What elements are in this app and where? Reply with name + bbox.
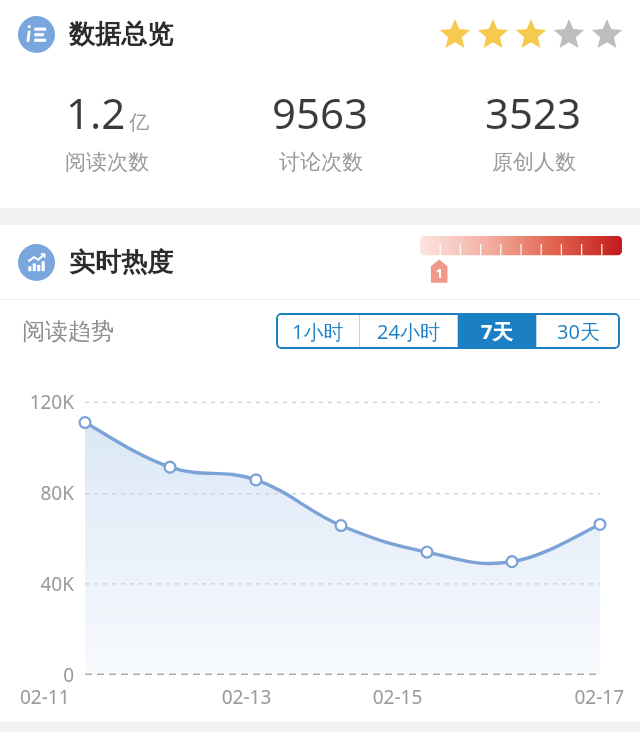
button[interactable]: Overview (0, 0, 640, 68)
staticText: 1小时 (292, 318, 344, 345)
staticText: 02-11 (20, 684, 171, 710)
staticText: 1 (436, 265, 443, 281)
staticText: 02-17 (473, 684, 624, 710)
button[interactable]: 7天 (458, 313, 536, 349)
staticText: 实时热度 (69, 246, 173, 279)
staticText: 30天 (557, 318, 600, 345)
other: Overview (18, 16, 55, 53)
button[interactable]: 3523 (427, 68, 640, 190)
button[interactable]: Rate 4 stars (550, 15, 588, 53)
staticText: 24小时 (377, 318, 440, 345)
staticText: 讨论次数 (279, 149, 363, 175)
staticText: 3523 (485, 84, 582, 141)
staticText: 阅读趋势 (22, 317, 114, 346)
button[interactable]: 1.2 (0, 68, 214, 190)
other: Live heat (18, 244, 55, 281)
staticText: 02-13 (171, 684, 322, 710)
button[interactable]: Rate 2 stars (474, 15, 512, 53)
button[interactable]: 1小时 (276, 313, 359, 349)
button[interactable]: 30天 (537, 313, 620, 349)
staticText: 40K (40, 571, 74, 593)
staticText: 80K (40, 480, 74, 502)
staticText: 02-15 (322, 684, 473, 710)
staticText: 120K (29, 389, 74, 411)
button[interactable]: Live heat (0, 225, 640, 299)
button[interactable]: Rate 1 stars (436, 15, 474, 53)
button[interactable]: 24小时 (360, 313, 457, 349)
button[interactable]: Rate 5 stars (588, 15, 626, 53)
staticText: 7天 (481, 318, 513, 345)
staticText: 阅读次数 (65, 149, 149, 175)
staticText: 原创人数 (492, 149, 576, 175)
staticText: 9563 (272, 84, 369, 141)
staticText: 1.2 (66, 84, 126, 141)
button[interactable]: Rate 3 stars (512, 15, 550, 53)
staticText: 亿 (129, 110, 149, 135)
staticText: 0 (63, 662, 74, 684)
staticText: 数据总览 (69, 18, 173, 51)
button[interactable]: 9563 (214, 68, 427, 190)
